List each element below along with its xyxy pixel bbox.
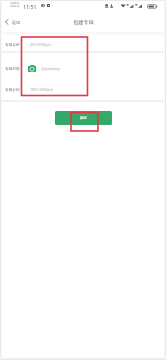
staticText: 专辑封面: [5, 66, 20, 71]
button[interactable]: 专辑介绍: [0, 83, 166, 100]
staticText: 中国移动: [10, 2, 20, 5]
button[interactable]: 返回: [0, 17, 24, 27]
staticText: 专辑名称: [5, 42, 20, 47]
other: 返回: [5, 19, 9, 25]
button[interactable]: 专辑名称: [0, 34, 166, 51]
staticText: 点击添加封面: [41, 67, 60, 71]
staticText: 20个字符以内: [30, 42, 51, 47]
staticText: 100个字符以内: [30, 87, 53, 92]
staticText: 专辑介绍: [5, 87, 20, 92]
staticText: 11:51: [23, 3, 37, 10]
button[interactable]: 确定: [55, 111, 112, 125]
staticText: 确定: [80, 116, 87, 120]
staticText: 中国移动: [10, 5, 20, 8]
button[interactable]: 专辑封面: [0, 53, 166, 83]
other: 添加封面: [28, 65, 36, 72]
staticText: 创建专辑: [73, 19, 94, 26]
staticText: 返回: [12, 20, 21, 25]
